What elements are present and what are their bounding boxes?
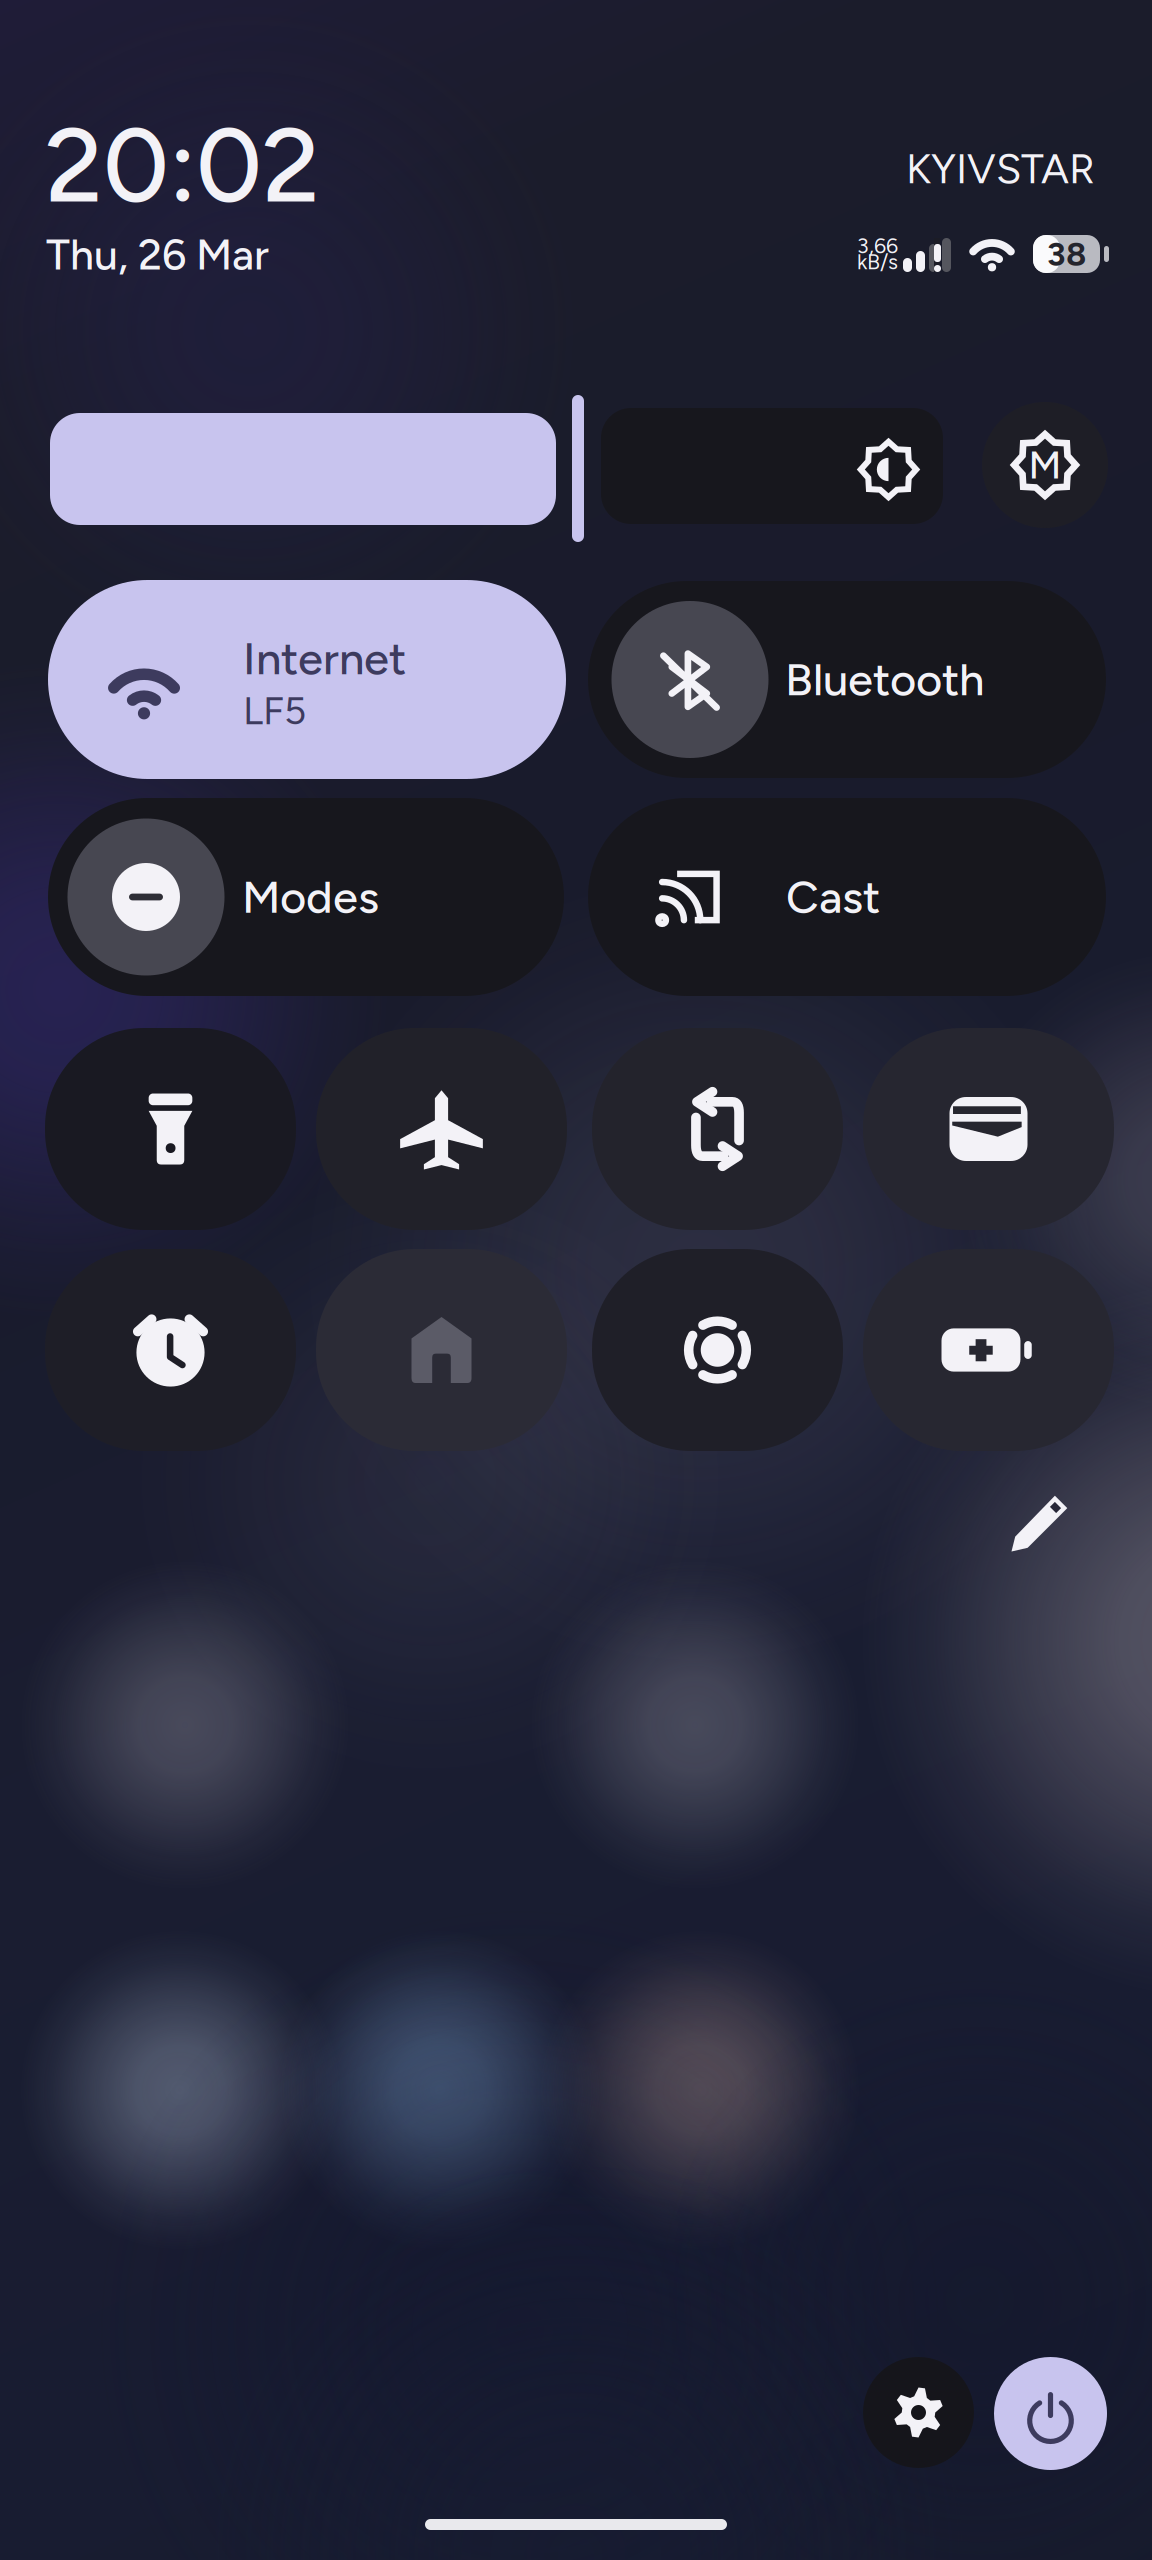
button[interactable]: Cast: [588, 798, 1106, 996]
button[interactable]: Alarm: [45, 1249, 296, 1451]
staticText: Bluetooth: [785, 652, 984, 707]
button[interactable]: Edit tiles: [990, 1473, 1090, 1573]
staticText: M: [1028, 442, 1061, 488]
staticText: Modes: [242, 870, 379, 924]
staticText: Thu, 26 Mar: [46, 229, 269, 280]
button[interactable]: Adaptive brightness: [601, 408, 943, 524]
button[interactable]: Modes: [48, 798, 564, 996]
staticText: 38: [1047, 234, 1086, 274]
button[interactable]: Wallet: [863, 1028, 1114, 1230]
staticText: 20:02: [45, 104, 320, 227]
button[interactable]: Bluetooth: [588, 581, 1106, 778]
button[interactable]: Battery share: [863, 1249, 1114, 1451]
button[interactable]: Emergency: [592, 1249, 843, 1451]
staticText: Cast: [786, 870, 880, 924]
staticText: KYIVSTAR: [906, 144, 1095, 194]
staticText: 3,66: [857, 233, 898, 259]
staticText: Internet: [243, 631, 406, 685]
button[interactable]: Modes: [982, 402, 1108, 528]
button[interactable]: Auto-rotate: [592, 1028, 843, 1230]
button[interactable]: Internet: [48, 580, 566, 779]
staticText: LF5: [243, 687, 306, 734]
button[interactable]: Home: [316, 1249, 567, 1451]
button[interactable]: Power: [994, 2357, 1107, 2470]
button[interactable]: Flashlight: [45, 1028, 296, 1230]
button[interactable]: Airplane mode: [316, 1028, 567, 1230]
button[interactable]: Settings: [863, 2357, 974, 2468]
staticText: kB/s: [857, 249, 898, 275]
